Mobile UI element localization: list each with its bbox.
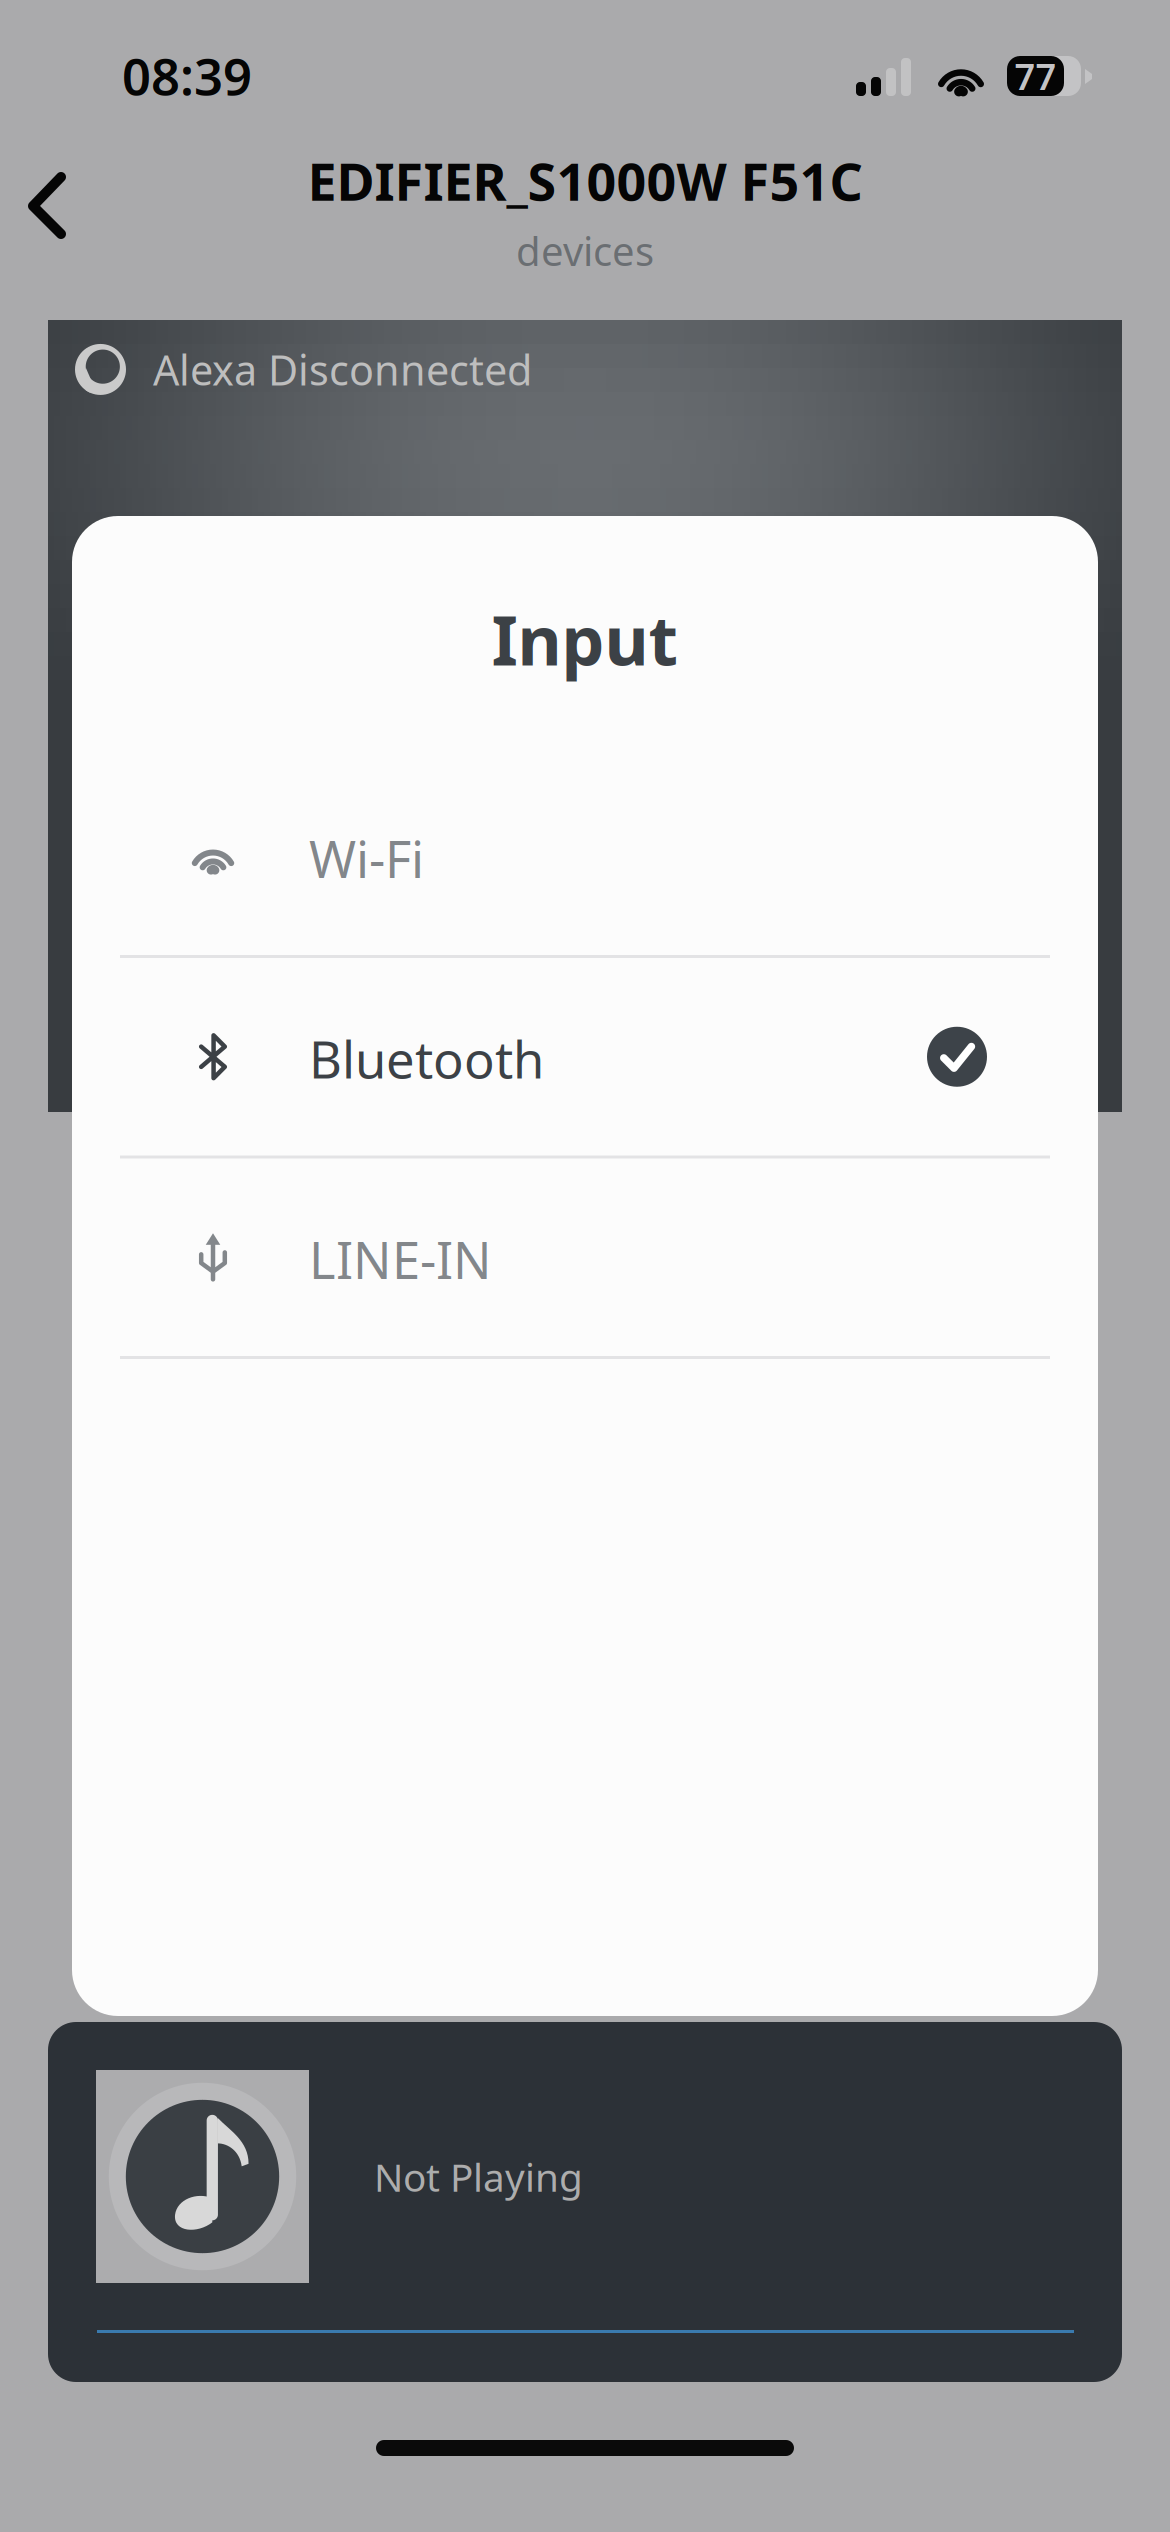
button[interactable]: Wi-Fi bbox=[120, 757, 1050, 955]
staticText: Wi-Fi bbox=[309, 825, 424, 892]
button[interactable]: LINE-IN bbox=[120, 1158, 1050, 1356]
staticText: Not Playing bbox=[374, 2151, 583, 2202]
staticText: Bluetooth bbox=[309, 1025, 544, 1092]
button[interactable]: Bluetooth bbox=[120, 958, 1050, 1155]
staticText: 77 bbox=[1014, 52, 1056, 100]
staticText: LINE-IN bbox=[309, 1226, 492, 1293]
staticText: 08:39 bbox=[122, 42, 252, 109]
staticText: Input bbox=[491, 594, 678, 684]
button[interactable]: Not Playing bbox=[48, 2022, 1122, 2382]
button[interactable]: Back bbox=[0, 158, 120, 256]
staticText: Alexa Disconnected bbox=[153, 342, 532, 397]
staticText: EDIFIER_S1000W F51C bbox=[307, 146, 862, 215]
staticText: devices bbox=[516, 224, 654, 277]
